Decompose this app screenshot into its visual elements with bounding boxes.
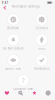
button[interactable]: Screen Time — [0, 54, 26, 70]
button[interactable]: Search — [14, 87, 27, 98]
staticText: Bedtime — [7, 26, 19, 30]
button[interactable]: Focus — [29, 34, 55, 50]
staticText: Question Time — [13, 87, 33, 91]
button[interactable]: Settings — [42, 87, 55, 98]
button[interactable]: Do Not Disturb — [0, 34, 26, 50]
staticText: ? — [22, 76, 25, 85]
staticText: Focus — [38, 47, 45, 50]
staticText: Controls — [36, 26, 48, 30]
button[interactable]: Bedtime — [0, 14, 26, 30]
button[interactable]: Back — [1, 4, 9, 12]
staticText: Do Not Disturb — [3, 47, 24, 50]
button[interactable]: ? — [10, 74, 36, 91]
button[interactable]: Favorites — [0, 87, 13, 98]
staticText: Screen Time — [5, 67, 21, 70]
button[interactable]: Controls — [29, 14, 55, 30]
button[interactable]: Reminders — [29, 54, 55, 70]
button[interactable]: Starred — [28, 87, 41, 98]
staticText: Reminders — [34, 67, 49, 70]
staticText: 9:41 — [2, 1, 9, 4]
staticText: Notification Settings — [12, 5, 40, 8]
